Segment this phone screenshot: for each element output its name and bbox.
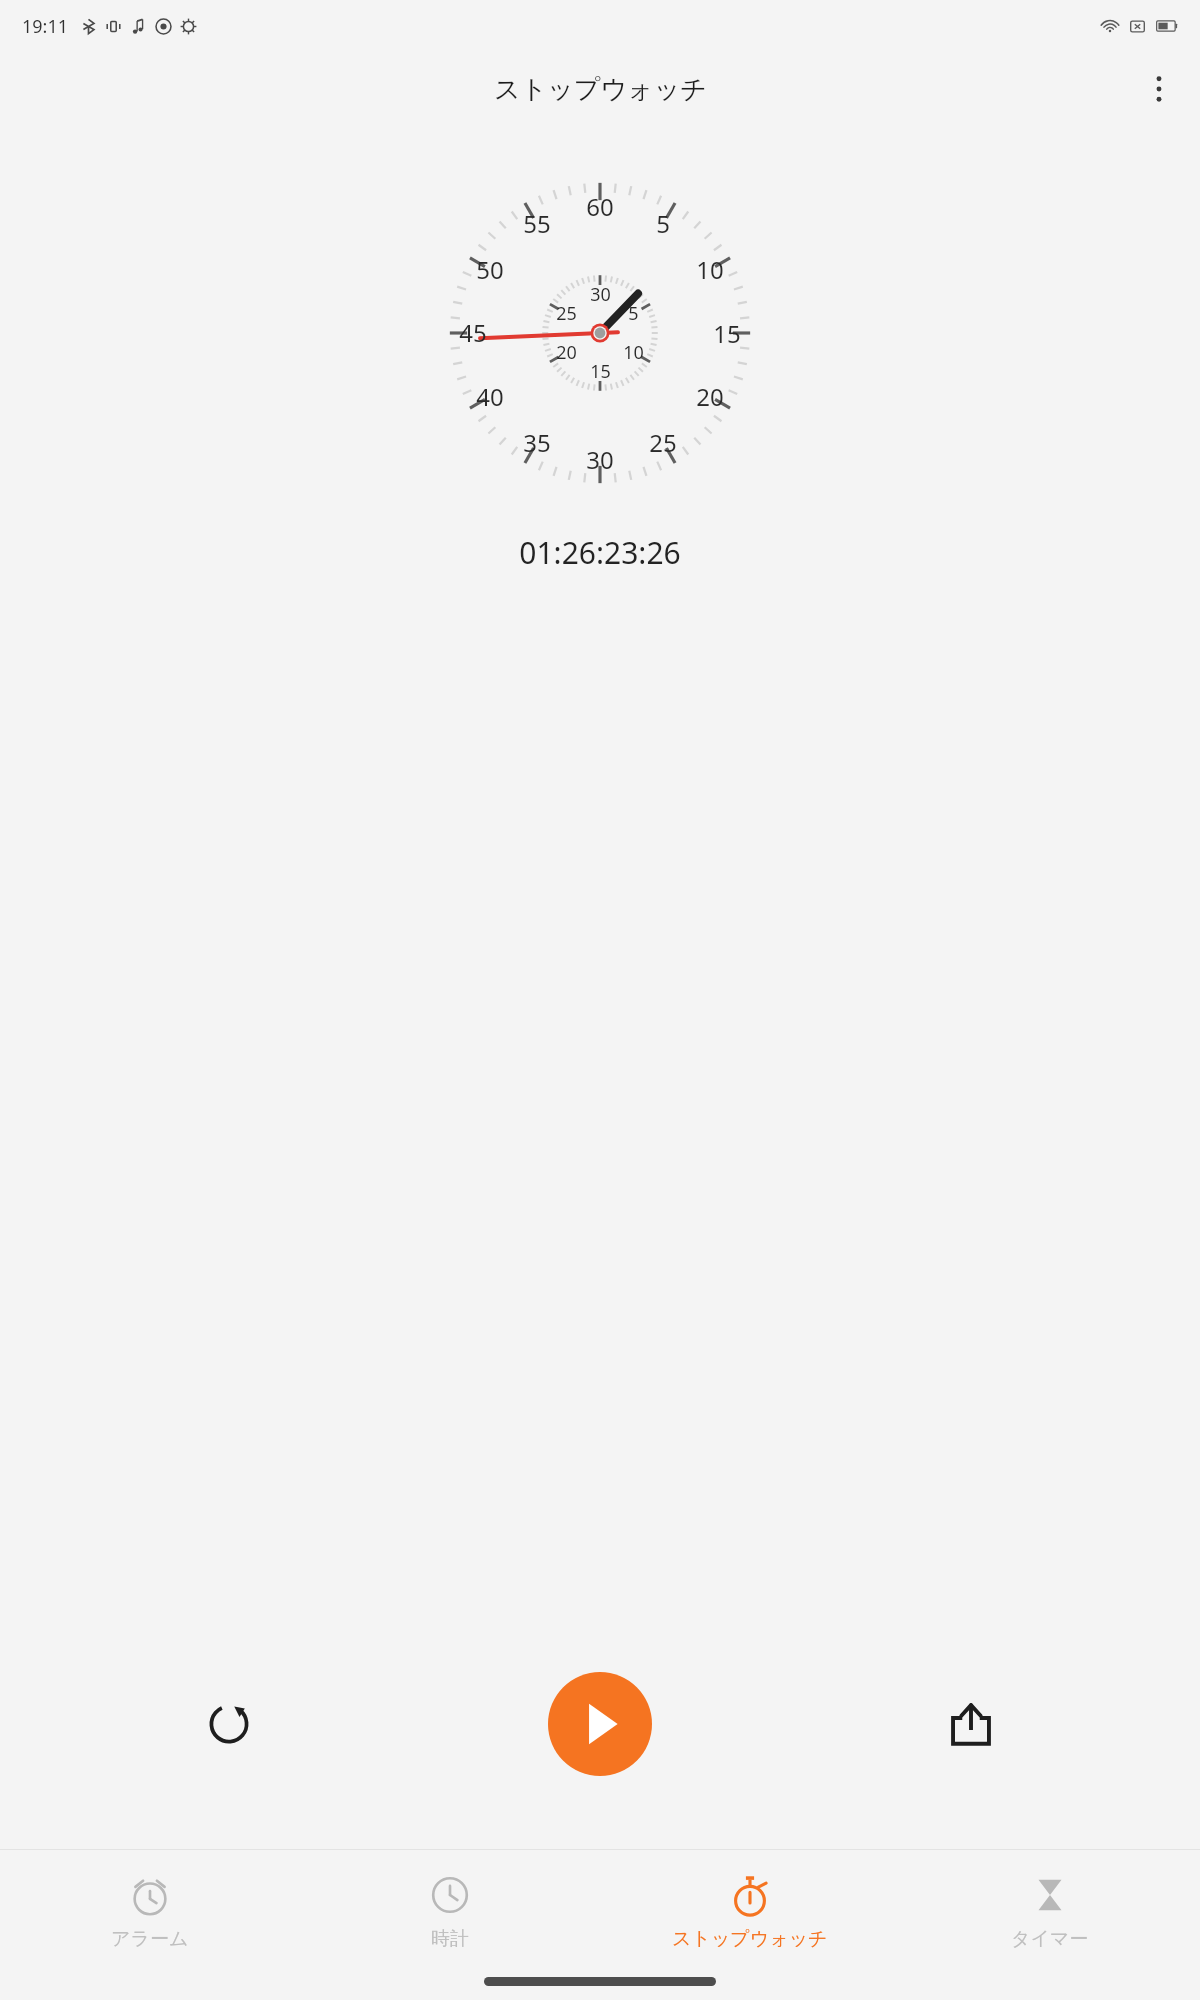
- staticText: 25: [649, 426, 677, 459]
- staticText: アラーム: [111, 1927, 189, 1951]
- staticText: 25: [556, 301, 577, 326]
- staticText: 15: [590, 359, 611, 384]
- button[interactable]: ストップウォッチ: [600, 1850, 900, 1972]
- staticText: 40: [476, 380, 504, 413]
- button[interactable]: More options: [1130, 60, 1188, 118]
- staticText: 60: [586, 190, 614, 223]
- staticText: 15: [713, 317, 741, 350]
- button[interactable]: アラーム: [0, 1850, 300, 1972]
- button[interactable]: 時計: [300, 1850, 600, 1972]
- staticText: 01:26:23:26: [0, 532, 1200, 573]
- button[interactable]: Share: [934, 1687, 1008, 1761]
- staticText: タイマー: [1011, 1927, 1089, 1951]
- staticText: 35: [523, 426, 551, 459]
- staticText: ストップウォッチ: [494, 73, 707, 106]
- button[interactable]: Start: [548, 1672, 652, 1776]
- staticText: ストップウォッチ: [672, 1927, 828, 1951]
- staticText: 10: [623, 340, 644, 365]
- staticText: 時計: [431, 1927, 469, 1951]
- staticText: 50: [476, 253, 504, 286]
- staticText: 10: [696, 253, 724, 286]
- staticText: 5: [656, 207, 670, 240]
- staticText: 19:11: [22, 14, 69, 39]
- staticText: 30: [586, 443, 614, 476]
- button[interactable]: Reset: [192, 1687, 266, 1761]
- staticText: 20: [556, 340, 577, 365]
- staticText: 30: [590, 282, 611, 307]
- staticText: 45: [459, 316, 487, 349]
- button[interactable]: タイマー: [900, 1850, 1200, 1972]
- staticText: 5: [628, 301, 639, 326]
- staticText: 55: [523, 207, 551, 240]
- staticText: 20: [696, 380, 724, 413]
